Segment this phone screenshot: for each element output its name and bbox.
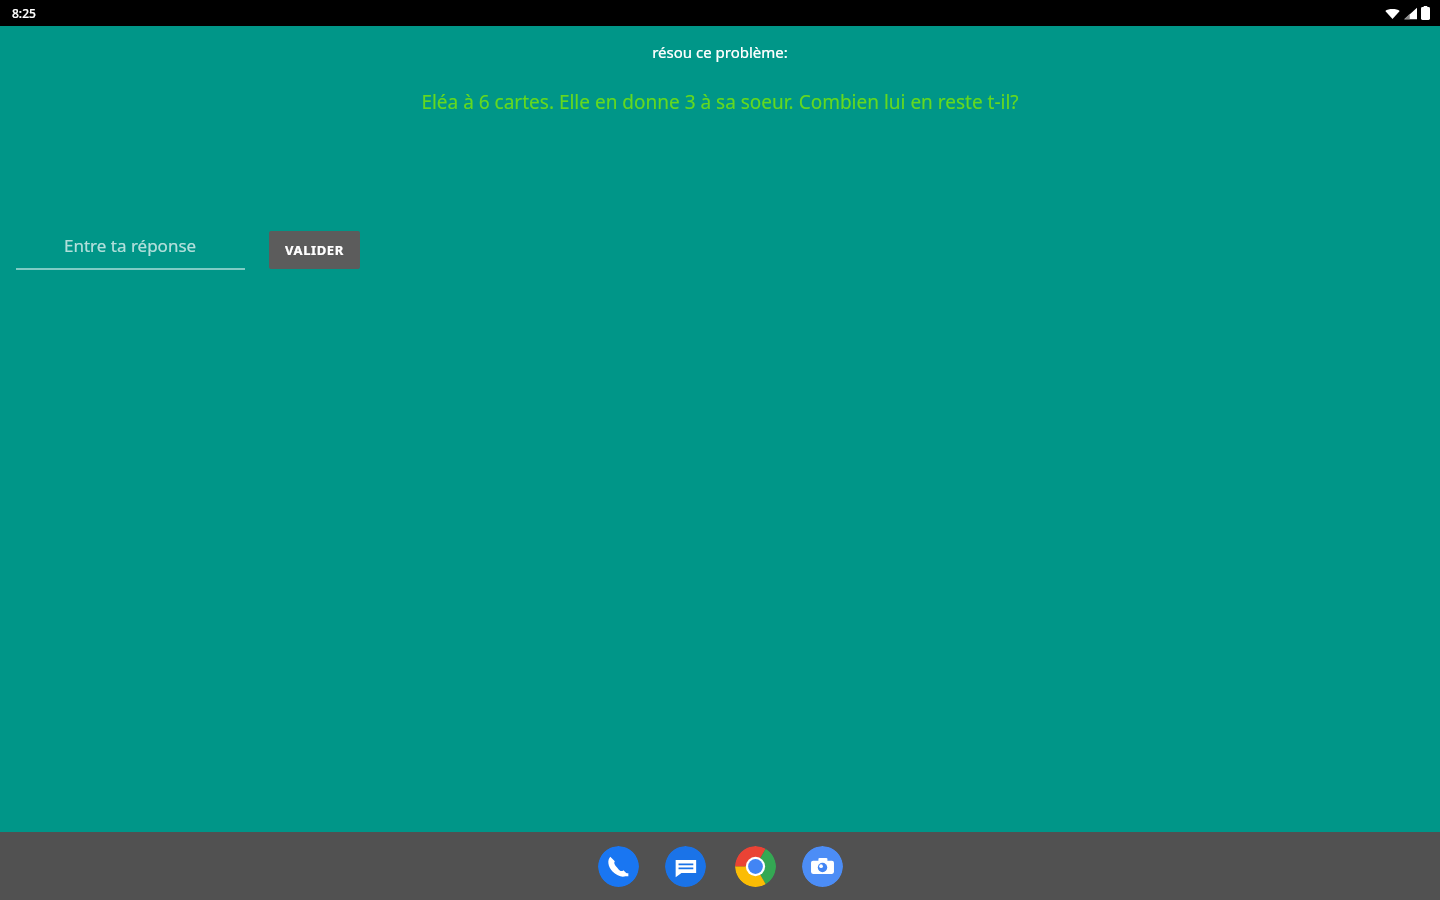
staticText: 8:25	[12, 5, 36, 21]
staticText: VALIDER	[285, 241, 344, 259]
button[interactable]: Entre ta réponse	[16, 228, 245, 270]
staticText: Eléa à 6 cartes. Elle en donne 3 à sa so…	[0, 89, 1440, 115]
button[interactable]: Phone	[598, 846, 639, 887]
button[interactable]: Chrome	[735, 846, 776, 887]
button[interactable]: Messages	[665, 846, 706, 887]
staticText: Entre ta réponse	[64, 234, 197, 257]
staticText: résou ce problème:	[0, 42, 1440, 62]
button[interactable]: VALIDER	[269, 231, 360, 269]
button[interactable]: Camera	[802, 846, 843, 887]
